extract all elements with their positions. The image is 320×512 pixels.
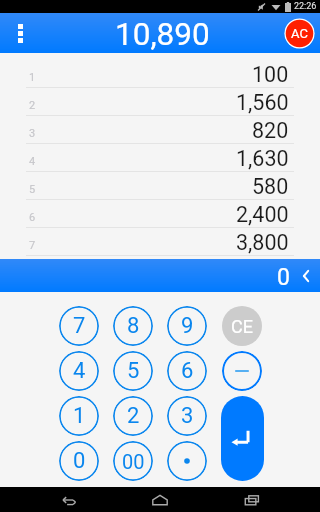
staticText: 6	[181, 358, 194, 384]
button[interactable]: More options	[0, 13, 40, 53]
staticText: 6	[29, 211, 36, 224]
button[interactable]: All clear	[284, 18, 315, 49]
staticText: 1	[73, 403, 86, 429]
button[interactable]: Back	[44, 487, 92, 512]
staticText: 100	[252, 62, 289, 87]
staticText: 3	[181, 403, 194, 429]
staticText: 9	[181, 313, 194, 339]
button[interactable]: Minus	[222, 351, 262, 391]
staticText: 3,800	[236, 230, 289, 255]
staticText: 4	[73, 358, 86, 384]
button[interactable]: CE	[222, 306, 262, 346]
staticText: 1,560	[236, 90, 289, 115]
button[interactable]: Backspace	[297, 259, 320, 292]
button[interactable]: Home	[136, 487, 184, 512]
staticText: 820	[252, 118, 289, 143]
button[interactable]: 5	[113, 351, 153, 391]
button[interactable]: 7	[59, 306, 99, 346]
staticText: 10,890	[115, 16, 210, 53]
staticText: 0	[73, 448, 86, 474]
staticText: 7	[73, 313, 86, 339]
button[interactable]: 8	[113, 306, 153, 346]
staticText: 0	[277, 264, 290, 291]
button[interactable]: 5	[0, 172, 320, 200]
staticText: CE	[231, 316, 253, 337]
button[interactable]: 9	[167, 306, 207, 346]
staticText: 5	[127, 358, 140, 384]
button[interactable]: 2	[0, 88, 320, 116]
staticText: 22:26	[294, 1, 317, 12]
staticText: 5	[29, 183, 36, 196]
button[interactable]: 7	[0, 228, 320, 256]
button[interactable]: 3	[0, 116, 320, 144]
staticText: AC	[291, 26, 308, 41]
button[interactable]: 2	[113, 396, 153, 436]
button[interactable]: 1	[59, 396, 99, 436]
button[interactable]: 4	[0, 144, 320, 172]
staticText: 3	[29, 127, 36, 140]
button[interactable]	[167, 441, 207, 481]
button[interactable]: 00	[113, 441, 153, 481]
staticText: 2	[29, 99, 36, 112]
staticText: 2	[127, 403, 140, 429]
button[interactable]: 0	[59, 441, 99, 481]
staticText: 8	[127, 313, 140, 339]
staticText: 7	[29, 239, 36, 252]
button[interactable]: Recents	[228, 487, 276, 512]
staticText: 1	[29, 71, 36, 84]
button[interactable]: 3	[167, 396, 207, 436]
button[interactable]: Enter	[221, 396, 264, 481]
staticText: 580	[252, 174, 289, 199]
button[interactable]: 4	[59, 351, 99, 391]
staticText: 1,630	[236, 146, 289, 171]
staticText: 00	[122, 450, 145, 473]
staticText: 2,400	[236, 202, 289, 227]
staticText: 4	[29, 155, 36, 168]
button[interactable]: 6	[0, 200, 320, 228]
button[interactable]: 1	[0, 60, 320, 88]
button[interactable]: 6	[167, 351, 207, 391]
